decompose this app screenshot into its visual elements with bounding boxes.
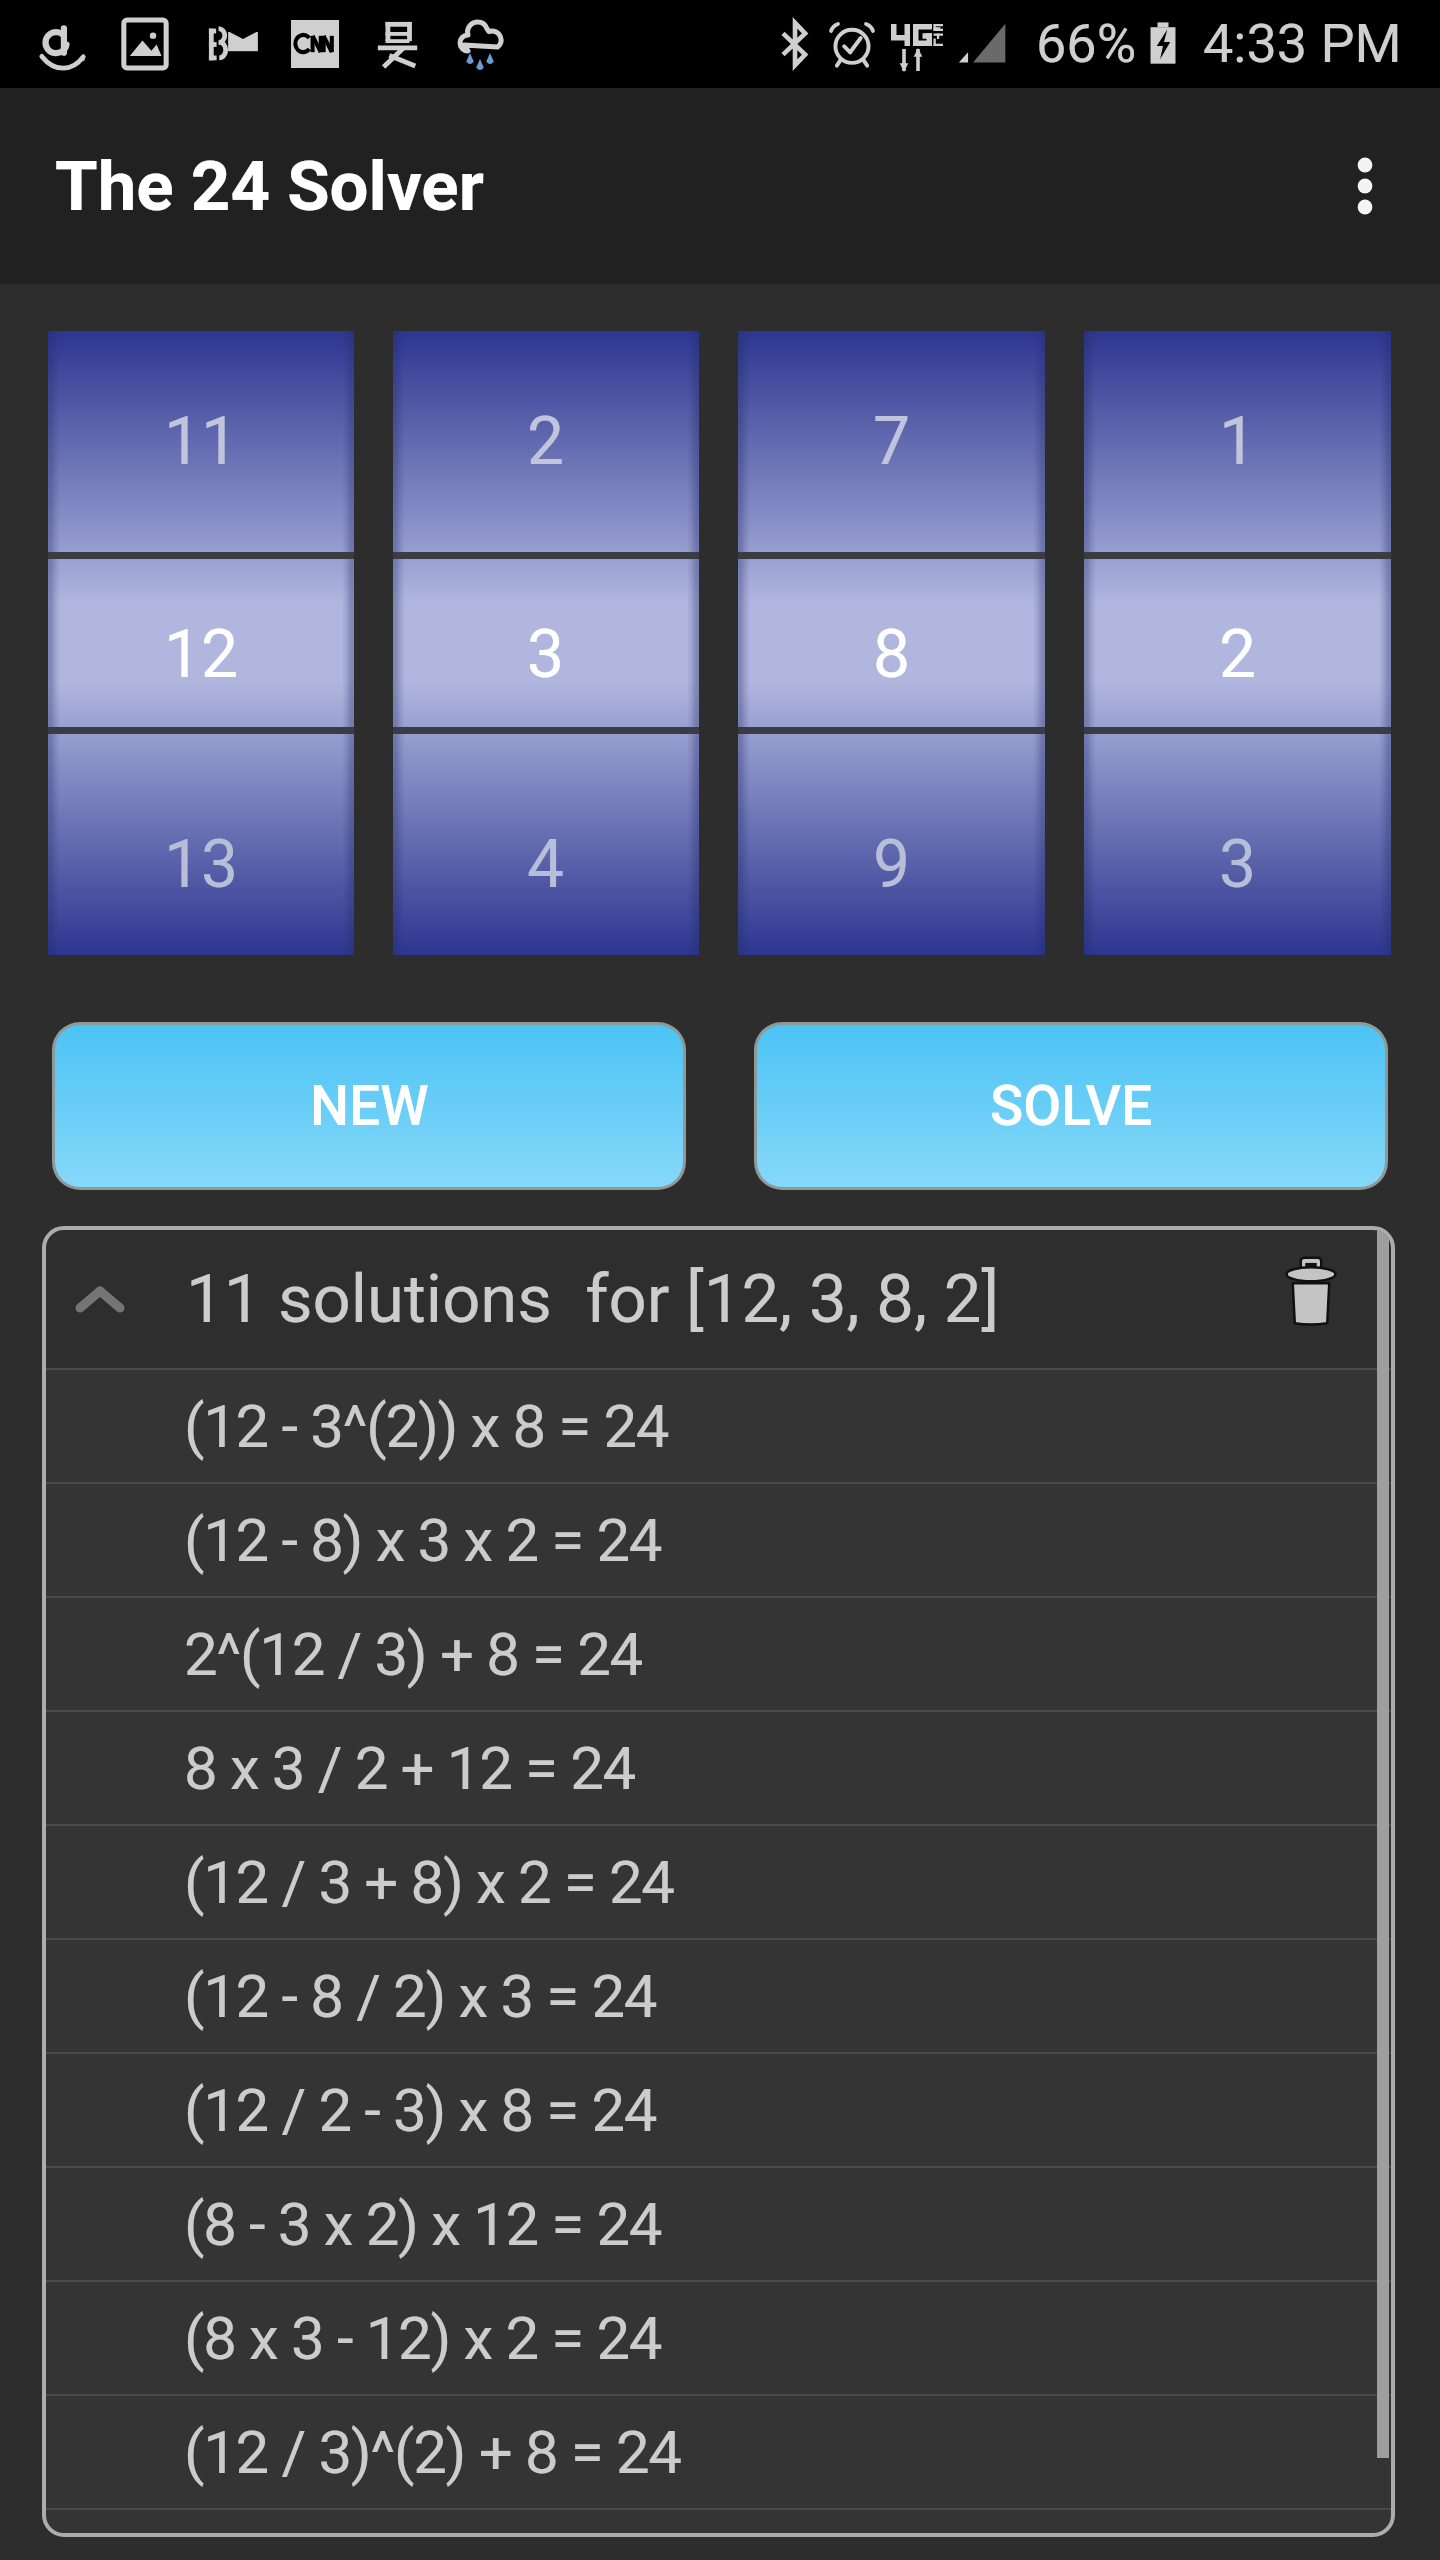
staticText: (12 - 3^(2)) x 8 = 24 <box>184 1391 669 1461</box>
staticText: 1 <box>1219 403 1257 480</box>
staticText: 4 <box>527 826 565 903</box>
staticText: 8 x 3 / 2 + 12 = 24 <box>184 1733 635 1803</box>
button[interactable]: (8 x 3 - 12) x 2 = 24 <box>46 2282 1391 2394</box>
staticText: 13 <box>164 826 239 903</box>
staticText: (12 - 8) x 3 x 2 = 24 <box>184 1505 662 1575</box>
staticText: 66% <box>1036 12 1137 75</box>
button[interactable]: 7 <box>738 331 1045 955</box>
button[interactable]: (8 - 3 x 2) x 12 = 24 <box>46 2168 1391 2280</box>
staticText: 2^(12 / 3) + 8 = 24 <box>184 1619 642 1689</box>
staticText: 7 <box>873 403 911 480</box>
button[interactable]: (12 - 3^(2)) x 8 = 24 <box>46 1370 1391 1482</box>
staticText: 3 <box>1219 826 1257 903</box>
staticText: 2 <box>1219 616 1257 693</box>
staticText: 11 solutions for [12, 3, 8, 2] <box>186 1260 1000 1339</box>
staticText: (12 / 2 - 3) x 8 = 24 <box>184 2075 657 2145</box>
staticText: (12 / 3)^(2) + 8 = 24 <box>184 2417 681 2487</box>
staticText: 2 <box>527 403 565 480</box>
staticText: (8 x 3 - 12) x 2 = 24 <box>184 2303 662 2373</box>
staticText: 12 <box>164 616 239 693</box>
button[interactable]: SOLVE <box>757 1025 1385 1187</box>
button[interactable]: More options <box>1290 88 1440 284</box>
staticText: (8 - 3 x 2) x 12 = 24 <box>184 2189 662 2259</box>
staticText: 11 <box>164 403 239 480</box>
button[interactable]: (12 / 3 + 8) x 2 = 24 <box>46 1826 1391 1938</box>
staticText: (12 - 8 / 2) x 3 = 24 <box>184 1961 657 2031</box>
staticText: The 24 Solver <box>55 146 484 227</box>
button[interactable]: 11 <box>48 331 354 955</box>
staticText: SOLVE <box>990 1074 1153 1138</box>
button[interactable]: NEW <box>55 1025 683 1187</box>
button[interactable]: Collapse <box>46 1230 154 1368</box>
button[interactable]: (12 / 3)^(2) + 8 = 24 <box>46 2396 1391 2508</box>
button[interactable]: (12 - 8) x 3 x 2 = 24 <box>46 1484 1391 1596</box>
button[interactable]: 2^(12 / 3) + 8 = 24 <box>46 1598 1391 1710</box>
button[interactable]: Collapse <box>46 1230 1391 1368</box>
button[interactable]: (12 - 8 / 2) x 3 = 24 <box>46 1940 1391 2052</box>
staticText: NEW <box>310 1074 429 1138</box>
staticText: 4:33 PM <box>1203 12 1402 75</box>
staticText: 8 <box>873 616 911 693</box>
button[interactable]: 1 <box>1084 331 1391 955</box>
staticText: 9 <box>873 826 911 903</box>
staticText: (12 / 3 + 8) x 2 = 24 <box>184 1847 674 1917</box>
button[interactable]: (12 / 2 - 3) x 8 = 24 <box>46 2054 1391 2166</box>
button[interactable]: Delete <box>1259 1230 1391 1368</box>
button[interactable]: 2 <box>393 331 699 955</box>
button[interactable]: 8 x 3 / 2 + 12 = 24 <box>46 1712 1391 1824</box>
staticText: 3 <box>527 616 565 693</box>
